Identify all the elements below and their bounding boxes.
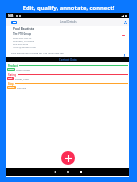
staticText: 5000 Ray Way dr: [13, 36, 32, 39]
staticText: Open: [8, 86, 15, 89]
button[interactable]: Product: [6, 64, 129, 71]
staticText: Rating: [8, 73, 17, 76]
button[interactable]: Voice input: [123, 54, 126, 57]
staticText: Product: [8, 64, 18, 67]
button[interactable]: Recents: [78, 169, 84, 175]
button[interactable]: Home: [65, 169, 71, 175]
staticText: The PTR Group: [13, 32, 32, 35]
staticText: anaheim, ca 92808: [13, 39, 35, 42]
button[interactable]: Step: [6, 82, 129, 89]
staticText: Good: [8, 68, 14, 71]
button[interactable]: Relationships: [123, 20, 127, 24]
button[interactable]: Add: [61, 151, 75, 165]
staticText: Step: [8, 82, 14, 85]
staticText: Lead Details: [60, 20, 77, 24]
button[interactable]: Back: [11, 21, 17, 24]
staticText: Omni Turbo: [16, 68, 31, 71]
staticText: Edit, qualify, annotate, connect!: [0, 4, 137, 12]
staticText: 9:05: [8, 14, 14, 18]
staticText: Hot: [8, 77, 13, 80]
staticText: 1pcs7@smilters.com: [13, 45, 37, 48]
staticText: Can Std: [17, 86, 26, 89]
staticText: Warm, Cold: [15, 77, 29, 80]
staticText: Paul would like a quote for 100 units ne…: [11, 51, 64, 54]
button[interactable]: Back: [52, 169, 58, 175]
staticText: Contact Data: [59, 58, 77, 62]
staticText: 555-583-0048: [13, 42, 29, 45]
staticText: Paul Bautista: [13, 27, 35, 31]
button[interactable]: Rating: [6, 73, 129, 80]
